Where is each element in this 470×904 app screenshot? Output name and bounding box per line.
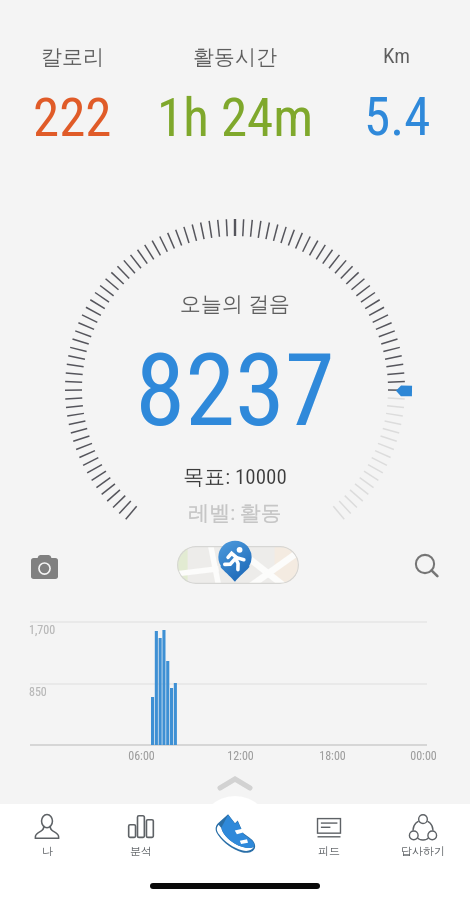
staticText: 나 bbox=[42, 844, 53, 858]
staticText: 850 bbox=[29, 685, 47, 699]
staticText: 답사하기 bbox=[401, 844, 445, 858]
staticText: 목표: 10000 bbox=[183, 464, 287, 490]
button[interactable]: Start workout bbox=[199, 796, 271, 868]
staticText: 5.4 bbox=[364, 86, 431, 148]
button[interactable]: 나 bbox=[0, 804, 94, 866]
button[interactable]: 칼로리 bbox=[0, 28, 162, 153]
staticText: 레벨: 활동 bbox=[188, 500, 282, 526]
button[interactable]: Map bbox=[177, 540, 299, 588]
staticText: 12:00 bbox=[227, 749, 254, 763]
button[interactable]: 분석 bbox=[94, 804, 188, 866]
button[interactable]: 답사하기 bbox=[376, 804, 470, 866]
staticText: 8237 bbox=[135, 331, 335, 449]
button[interactable]: Km bbox=[307, 28, 470, 153]
button[interactable]: 활동시간 bbox=[145, 28, 325, 153]
staticText: 오늘의 걸음 bbox=[180, 291, 290, 317]
staticText: 1h 24m bbox=[157, 87, 314, 149]
staticText: 1,700 bbox=[29, 623, 56, 637]
staticText: 222 bbox=[33, 87, 112, 149]
staticText: 분석 bbox=[130, 844, 152, 858]
staticText: 칼로리 bbox=[41, 44, 104, 70]
staticText: 06:00 bbox=[128, 749, 155, 763]
staticText: 피드 bbox=[318, 844, 340, 858]
button[interactable]: Search bbox=[398, 537, 456, 595]
staticText: 00:00 bbox=[410, 749, 437, 763]
staticText: Km bbox=[383, 44, 411, 69]
button[interactable]: Camera bbox=[15, 538, 73, 596]
button[interactable]: 피드 bbox=[282, 804, 376, 866]
staticText: 활동시간 bbox=[193, 44, 277, 70]
staticText: 18:00 bbox=[319, 749, 346, 763]
